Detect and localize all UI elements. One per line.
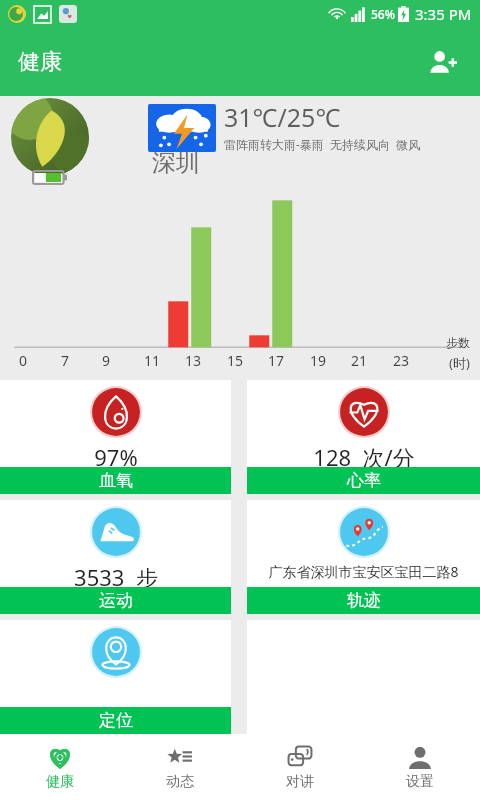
staticText: 21 — [351, 351, 368, 370]
staticText: 动态 — [166, 773, 194, 791]
staticText: 17 — [268, 351, 285, 370]
button[interactable] — [6, 98, 94, 186]
button[interactable]: Add contact — [420, 39, 466, 85]
staticText: 定位 — [99, 710, 133, 731]
button[interactable]: 对讲 — [240, 734, 360, 800]
button[interactable]: 动态 — [120, 734, 240, 800]
button[interactable]: 广东省深圳市宝安区宝田二路8 — [247, 500, 480, 614]
button[interactable]: 97% — [0, 380, 231, 494]
staticText: 健康 — [18, 48, 62, 76]
staticText: 血氧 — [99, 470, 133, 491]
button[interactable]: 健康 — [0, 734, 120, 800]
staticText: 3:35 PM — [415, 4, 472, 24]
staticText: 运动 — [99, 590, 133, 611]
staticText: 3533 步 — [74, 562, 158, 587]
staticText: 9 — [102, 351, 111, 370]
button[interactable]: 设置 — [360, 734, 480, 800]
staticText: 13 — [185, 351, 202, 370]
staticText: 健康 — [46, 773, 74, 791]
staticText: 19 — [310, 351, 327, 370]
staticText: 深圳 — [152, 148, 200, 178]
staticText: (时) — [449, 354, 470, 372]
staticText: 雷阵雨转大雨-暴雨 无持续风向 微风 — [224, 136, 421, 152]
staticText: 轨迹 — [347, 590, 381, 611]
staticText: 15 — [227, 351, 244, 370]
button[interactable]: 3533 步 — [0, 500, 231, 614]
staticText: 31℃/25℃ — [224, 100, 341, 134]
button[interactable]: 128 次/分 — [247, 380, 480, 494]
staticText: 设置 — [406, 773, 434, 791]
staticText: 心率 — [347, 470, 381, 491]
staticText: 56% — [371, 6, 395, 22]
staticText: 23 — [393, 351, 410, 370]
staticText: 128 次/分 — [313, 442, 415, 467]
button[interactable]: 定位 — [0, 620, 231, 734]
staticText: 11 — [144, 351, 161, 370]
staticText: 0 — [19, 351, 28, 370]
staticText: 97% — [94, 442, 138, 467]
staticText: 步数 — [446, 335, 470, 350]
staticText: 广东省深圳市宝安区宝田二路8 — [268, 562, 459, 581]
staticText: 对讲 — [286, 773, 314, 791]
staticText: 7 — [61, 351, 70, 370]
